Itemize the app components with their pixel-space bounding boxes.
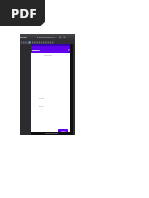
- staticText: Banking Services: [20, 37, 27, 38]
- staticText: SUBMIT: [61, 131, 66, 133]
- button[interactable]: Email ID: [39, 106, 58, 107]
- staticText: Full Name: [39, 98, 45, 99]
- staticText: Email ID: [39, 106, 44, 107]
- staticText: BankingApp: [32, 50, 40, 52]
- button[interactable]: Full Name: [39, 98, 58, 99]
- staticText: Create new Account: [44, 55, 52, 56]
- staticText: emulator Device 40.16: [39, 36, 56, 38]
- staticText: PDF: [11, 4, 37, 22]
- button[interactable]: PDF file: [0, 0, 45, 26]
- button[interactable]: SUBMIT: [58, 129, 68, 134]
